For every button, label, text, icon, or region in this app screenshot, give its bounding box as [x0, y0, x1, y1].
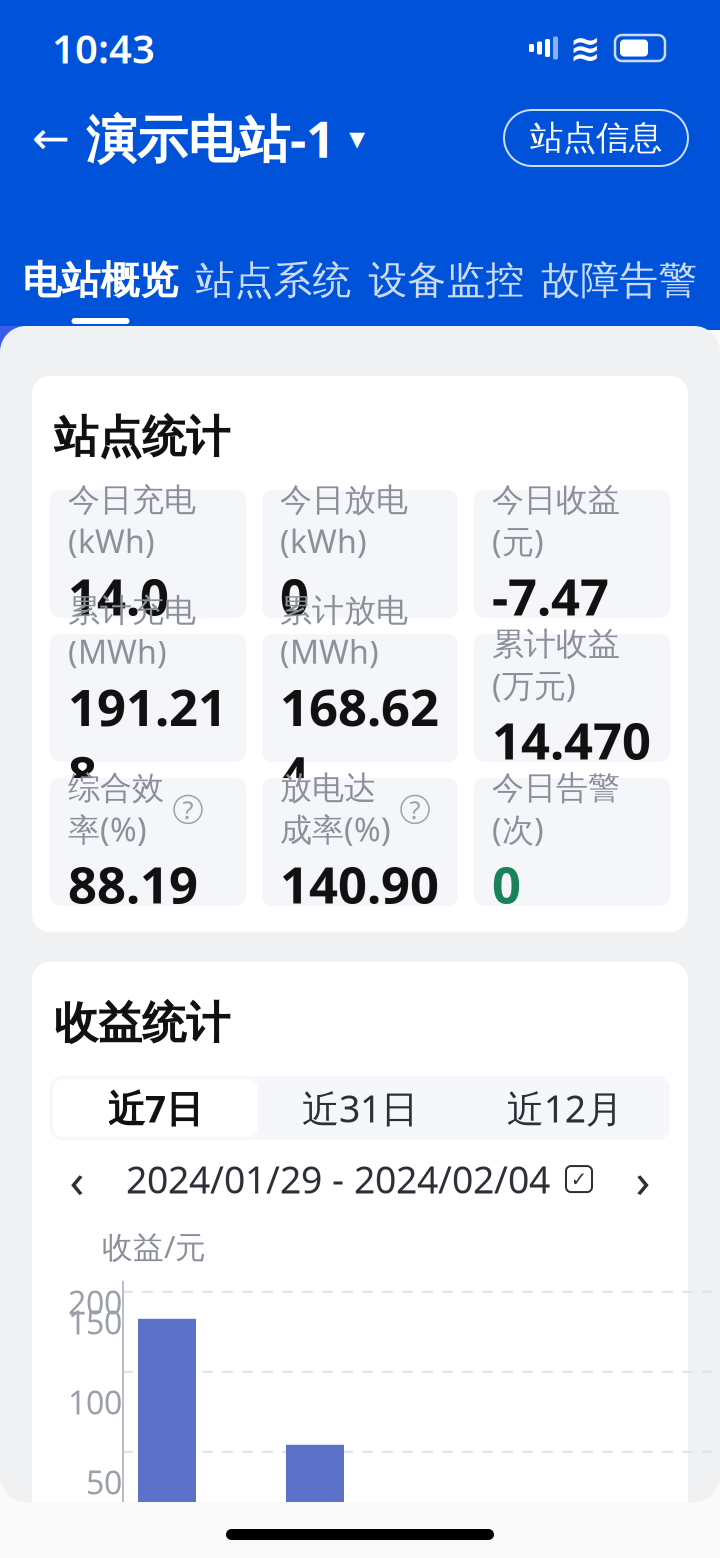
staticText: 站点系统: [195, 256, 351, 304]
staticText: 88.19: [68, 850, 198, 918]
staticText: ✓: [570, 1168, 587, 1190]
staticText: 站点信息: [530, 117, 662, 158]
staticText: 累计放电(MWh): [280, 591, 408, 673]
button[interactable]: 站点信息: [504, 110, 688, 166]
staticText: 综合效率(%): [68, 768, 164, 850]
button[interactable]: 设备监控: [360, 246, 533, 330]
staticText: ›: [635, 1147, 650, 1211]
staticText: 故障告警: [541, 256, 697, 304]
button[interactable]: 电站概览: [14, 246, 187, 330]
staticText: 放电达成率(%): [280, 768, 391, 850]
staticText: 191.218: [68, 673, 227, 807]
button[interactable]: 故障告警: [533, 246, 706, 330]
staticText: ?: [409, 793, 420, 826]
staticText: 电站概览: [22, 256, 178, 304]
staticText: -7.47: [492, 562, 609, 630]
staticText: 累计收益(万元): [492, 624, 620, 706]
staticText: 0: [492, 850, 521, 918]
staticText: 近12月: [507, 1083, 623, 1133]
staticText: ←: [32, 112, 70, 164]
button[interactable]: 演示电站-1: [82, 107, 369, 169]
staticText: 140.90: [280, 850, 439, 918]
staticText: 收益/元: [102, 1226, 206, 1267]
staticText: ≋: [569, 27, 600, 69]
button[interactable]: 站点系统: [187, 246, 360, 330]
staticText: 今日充电(kWh): [68, 480, 196, 562]
staticText: 14.0: [68, 562, 169, 630]
staticText: 站点统计: [54, 410, 230, 464]
button[interactable]: 近31日: [258, 1079, 462, 1137]
staticText: 收益统计: [54, 996, 230, 1050]
button[interactable]: 近7日: [53, 1079, 258, 1137]
staticText: 10:43: [52, 21, 155, 74]
staticText: 累计充电(MWh): [68, 591, 196, 673]
staticText: ‹: [69, 1147, 84, 1211]
staticText: 200: [68, 1281, 122, 1323]
staticText: 今日收益(元): [492, 480, 620, 562]
staticText: 设备监控: [368, 256, 524, 304]
button[interactable]: Back: [20, 107, 82, 169]
staticText: 150: [68, 1301, 122, 1343]
button[interactable]: 近12月: [462, 1079, 667, 1137]
staticText: 近7日: [108, 1083, 203, 1133]
button[interactable]: Previous range: [50, 1152, 104, 1206]
staticText: 14.470: [492, 706, 651, 774]
staticText: 0: [280, 562, 309, 630]
staticText: ▾: [349, 120, 365, 156]
staticText: 演示电站-1: [86, 104, 335, 172]
staticText: 今日告警(次): [492, 768, 620, 850]
staticText: 50: [86, 1461, 122, 1503]
button[interactable]: 2024/01/29 - 2024/02/04: [126, 1154, 594, 1204]
staticText: 2024/01/29 - 2024/02/04: [126, 1154, 550, 1204]
staticText: 今日放电(kWh): [280, 480, 408, 562]
staticText: 100: [68, 1381, 122, 1423]
staticText: ?: [182, 793, 193, 826]
staticText: 近31日: [302, 1083, 418, 1133]
button[interactable]: Next range: [616, 1152, 670, 1206]
staticText: 168.624: [280, 673, 439, 807]
